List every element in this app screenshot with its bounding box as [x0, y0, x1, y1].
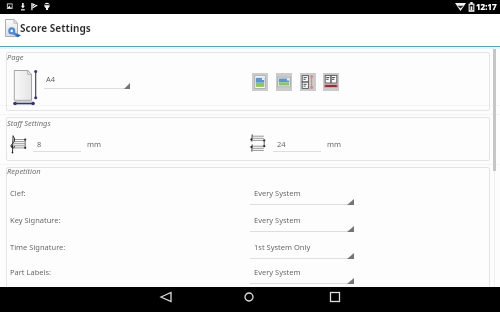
staticText: Clef: — [10, 188, 26, 198]
button[interactable]: 24 — [273, 139, 321, 152]
staticText: Score Settings — [20, 21, 91, 35]
button[interactable]: 8 — [33, 139, 81, 152]
staticText: mm — [327, 139, 342, 149]
staticText: mm — [87, 139, 102, 149]
staticText: Every System — [254, 215, 301, 225]
button[interactable]: Page size — [44, 74, 130, 89]
staticText: Every System — [254, 267, 301, 277]
button[interactable]: Landscape orientation — [276, 73, 292, 91]
staticText: 12:17 — [476, 1, 497, 12]
button[interactable]: Two page view — [300, 73, 316, 91]
button[interactable]: Clef: — [0, 188, 500, 205]
staticText: A4 — [46, 74, 56, 84]
staticText: 1st System Only — [254, 242, 311, 252]
button[interactable]: Part Labels: — [0, 267, 500, 284]
button[interactable]: Time Signature: — [0, 242, 500, 259]
staticText: Key Signature: — [10, 215, 61, 225]
button[interactable]: Portrait orientation — [252, 73, 268, 91]
button[interactable]: Page numbering — [323, 73, 339, 91]
staticText: Repetition — [7, 166, 41, 176]
staticText: Time Signature: — [10, 242, 66, 252]
staticText: 24 — [277, 139, 286, 149]
button[interactable]: Key Signature: — [0, 215, 500, 232]
button[interactable]: Score Settings — [0, 0, 500, 46]
button[interactable]: Recents — [315, 287, 357, 312]
staticText: Page — [7, 52, 24, 62]
button[interactable]: Back — [146, 287, 188, 312]
staticText: Every System — [254, 188, 301, 198]
staticText: 8 — [37, 139, 42, 149]
staticText: Part Labels: — [10, 267, 52, 277]
staticText: Staff Settings — [7, 118, 51, 128]
button[interactable]: Home — [229, 287, 271, 312]
